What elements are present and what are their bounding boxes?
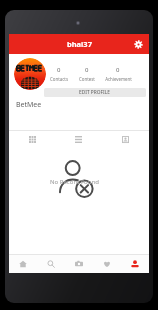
- button[interactable]: Profile: [121, 254, 149, 273]
- staticText: Contest: [79, 76, 95, 82]
- button[interactable]: Settings: [131, 37, 146, 52]
- button[interactable]: EDIT PROFILE: [44, 88, 146, 97]
- staticText: No Record Found: [50, 178, 99, 186]
- staticText: 0: [57, 66, 61, 74]
- button[interactable]: Grid view: [9, 131, 55, 147]
- staticText: Achievement: [105, 76, 132, 82]
- staticText: 0: [85, 66, 89, 74]
- staticText: bhai37: [67, 39, 92, 49]
- button[interactable]: Home: [9, 254, 37, 273]
- staticText: 0: [116, 66, 120, 74]
- staticText: BetMee: [16, 100, 42, 110]
- button[interactable]: Profile photo: [14, 58, 46, 90]
- staticText: Contacts: [50, 76, 68, 82]
- button[interactable]: Tagged: [102, 131, 149, 147]
- button[interactable]: Camera: [65, 254, 93, 273]
- button[interactable]: List view: [55, 131, 102, 147]
- button[interactable]: Favorites: [93, 254, 121, 273]
- button[interactable]: Search: [37, 254, 65, 273]
- staticText: EDIT PROFILE: [79, 89, 111, 96]
